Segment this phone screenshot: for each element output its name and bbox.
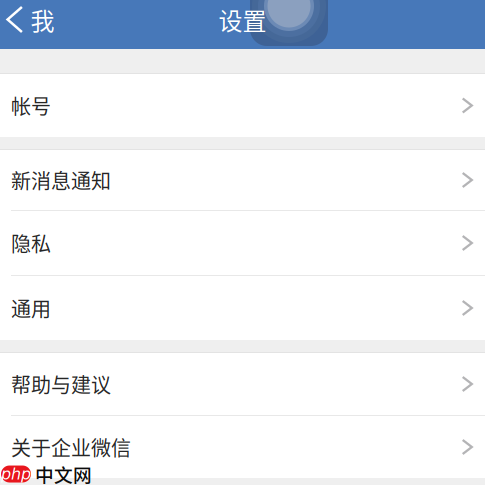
button[interactable]: 帮助与建议 (0, 353, 485, 415)
staticText: 新消息通知 (11, 165, 111, 194)
staticText: 隐私 (11, 228, 51, 257)
staticText: 通用 (11, 293, 51, 322)
button[interactable]: 帐号 (0, 74, 485, 137)
button[interactable]: 隐私 (0, 211, 485, 275)
staticText: 中文网 (35, 460, 92, 485)
button[interactable]: 我 (0, 0, 64, 44)
staticText: 关于企业微信 (11, 432, 131, 461)
staticText: 帐号 (11, 91, 51, 120)
staticText: 帮助与建议 (11, 369, 111, 398)
button[interactable]: 新消息通知 (0, 150, 485, 210)
button[interactable]: 通用 (0, 276, 485, 340)
button[interactable]: 关于企业微信 (0, 416, 485, 478)
staticText: 我 (30, 2, 54, 37)
staticText: php (1, 465, 31, 483)
staticText: 设置 (218, 2, 266, 37)
